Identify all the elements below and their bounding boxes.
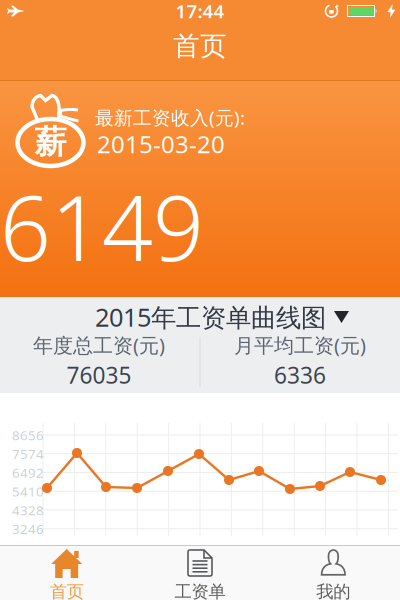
button[interactable]: 首页 (0, 546, 133, 600)
staticText: 3246 (12, 520, 44, 538)
button[interactable]: 工资单 (133, 546, 267, 600)
staticText: 2015-03-20 (97, 128, 225, 160)
staticText: 月平均工资(元) (234, 332, 366, 358)
staticText: 年度总工资(元) (33, 332, 165, 358)
staticText: 6492 (12, 464, 44, 481)
staticText: 首页 (173, 30, 227, 62)
staticText: 8656 (12, 426, 44, 444)
staticText: 17:44 (175, 0, 224, 23)
staticText: 薪 (34, 122, 66, 162)
staticText: 4328 (12, 501, 44, 519)
staticText: 76035 (66, 360, 131, 390)
staticText: 我的 (316, 581, 350, 600)
staticText: 6149 (0, 167, 204, 286)
staticText: 7574 (12, 445, 44, 463)
staticText: 6336 (274, 360, 326, 390)
button[interactable]: 2015年工资单曲线图 (95, 300, 349, 334)
staticText: 2015年工资单曲线图 (95, 300, 326, 334)
staticText: 5410 (12, 482, 44, 500)
staticText: 首页 (50, 581, 84, 600)
staticText: 工资单 (174, 581, 225, 600)
button[interactable]: 我的 (267, 546, 400, 600)
staticText: 最新工资收入(元): (95, 105, 245, 130)
